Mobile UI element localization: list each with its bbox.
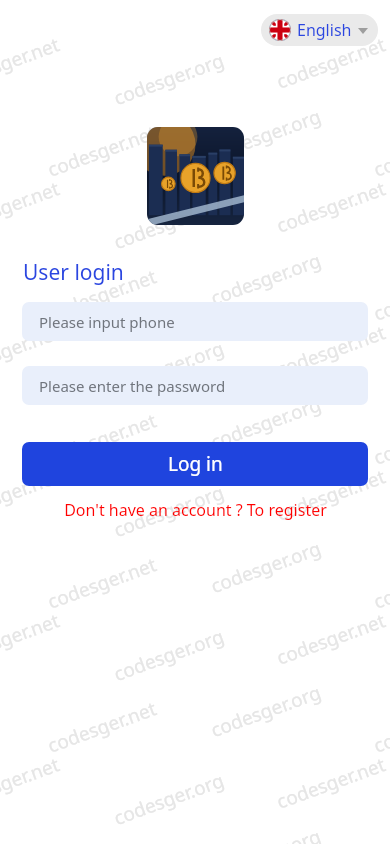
staticText: codesger.net [0, 751, 63, 815]
staticText: codesger.org [207, 535, 325, 599]
staticText: codesger.org [207, 391, 325, 455]
staticText: codesger.net [0, 463, 63, 527]
staticText: codesger.net [370, 551, 390, 615]
staticText: codesger.net [44, 119, 160, 183]
staticText: codesger.org [110, 479, 228, 543]
button[interactable]: Please input phone [22, 302, 368, 341]
staticText: Log in [168, 451, 223, 477]
staticText: codesger.org [207, 103, 325, 167]
staticText: codesger.net [44, 407, 160, 471]
staticText: codesger.net [273, 175, 389, 239]
staticText: codesger.org [207, 247, 325, 311]
staticText: codesger.net [273, 31, 389, 95]
staticText: codesger.net [273, 319, 389, 383]
staticText: codesger.net [370, 407, 390, 471]
staticText: English [297, 19, 352, 41]
staticText: codesger.net [0, 31, 63, 95]
staticText: codesger.org [110, 191, 228, 255]
button[interactable]: English language [261, 14, 378, 46]
staticText: codesger.org [110, 335, 228, 399]
staticText: codesger.net [370, 119, 390, 183]
staticText: Please input phone [39, 312, 175, 332]
staticText: codesger.net [273, 607, 389, 671]
staticText: codesger.net [370, 695, 390, 759]
staticText: codesger.net [44, 551, 160, 615]
staticText: User login [23, 258, 124, 287]
staticText: codesger.org [207, 823, 325, 844]
staticText: codesger.net [0, 607, 63, 671]
staticText: codesger.net [370, 263, 390, 327]
staticText: Please enter the password [39, 376, 226, 396]
staticText: codesger.org [110, 47, 228, 111]
staticText: codesger.net [273, 463, 389, 527]
staticText: Don't have an account ? To register [64, 499, 327, 521]
staticText: codesger.net [44, 695, 160, 759]
staticText: codesger.net [0, 319, 63, 383]
staticText: codesger.net [0, 175, 63, 239]
staticText: codesger.net [273, 751, 389, 815]
staticText: codesger.org [110, 767, 228, 831]
staticText: codesger.org [207, 679, 325, 743]
staticText: codesger.net [44, 263, 160, 327]
button[interactable]: Please enter the password [22, 366, 368, 405]
button[interactable]: Log in [22, 442, 368, 486]
staticText: codesger.org [110, 623, 228, 687]
other: English language [269, 19, 291, 41]
button[interactable]: Don't have an account ? To register [0, 499, 390, 521]
